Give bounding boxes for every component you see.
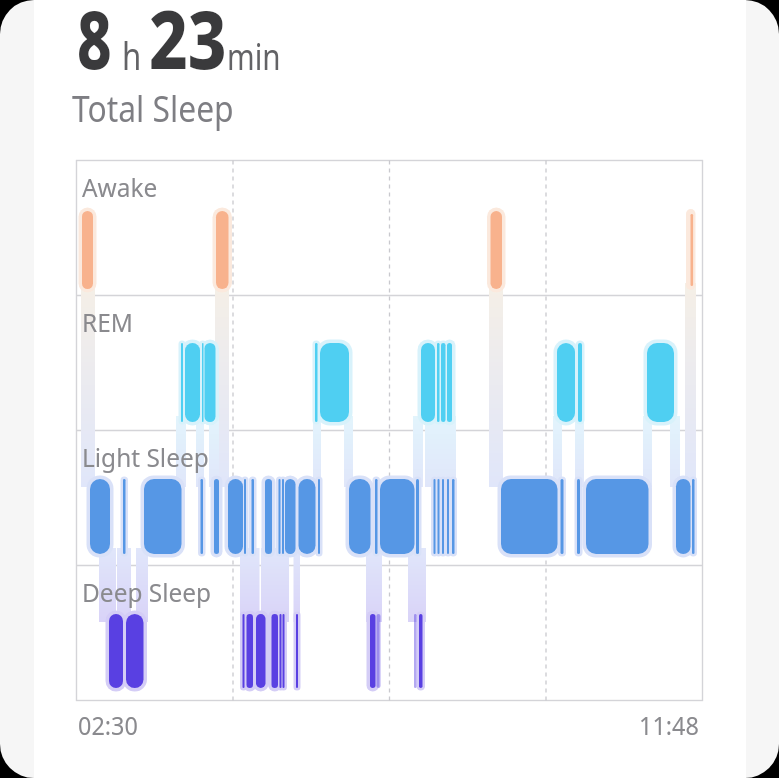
staticText: h	[122, 29, 142, 81]
staticText: Light Sleep	[82, 439, 209, 474]
staticText: 23	[149, 0, 227, 92]
staticText: Total Sleep	[72, 82, 234, 132]
staticText: 02:30	[78, 707, 138, 742]
staticText: 11:48	[639, 707, 699, 742]
staticText: min	[227, 30, 281, 80]
staticText: Awake	[82, 169, 158, 204]
staticText: 8	[77, 0, 112, 92]
staticText: REM	[82, 304, 134, 339]
staticText: Deep Sleep	[82, 574, 212, 609]
